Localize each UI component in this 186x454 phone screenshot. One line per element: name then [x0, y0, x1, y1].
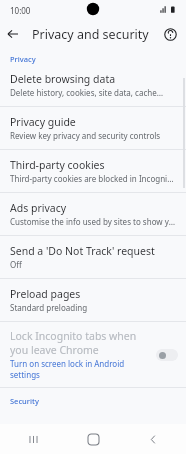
- button[interactable]: Home: [80, 426, 106, 452]
- staticText: Off: [10, 259, 22, 270]
- button[interactable]: Send a 'Do Not Track' request: [0, 236, 186, 278]
- button[interactable]: Help: [158, 22, 182, 46]
- staticText: Delete history, cookies, site data, cach…: [10, 87, 164, 98]
- button[interactable]: Ads privacy: [0, 193, 186, 235]
- staticText: Security: [10, 396, 186, 406]
- button[interactable]: Privacy guide: [0, 107, 186, 149]
- staticText: Preload pages: [10, 287, 81, 301]
- button[interactable]: Delete browsing data: [0, 67, 186, 106]
- staticText: Turn on screen lock in Android settings: [10, 358, 150, 380]
- staticText: Privacy guide: [10, 115, 76, 129]
- staticText: Privacy: [10, 54, 186, 64]
- button[interactable]: Lock Incognito tabs when you leave Chrom…: [0, 322, 186, 387]
- staticText: Third-party cookies: [10, 158, 105, 172]
- other: Lock Incognito tabs toggle: [156, 349, 178, 361]
- staticText: Standard preloading: [10, 302, 88, 313]
- staticText: Send a 'Do Not Track' request: [10, 244, 155, 258]
- staticText: Delete browsing data: [10, 72, 116, 86]
- staticText: 10:00: [10, 5, 31, 16]
- button[interactable]: Preload pages: [0, 279, 186, 321]
- staticText: Customise the info used by sites to show…: [10, 216, 176, 227]
- button[interactable]: Third-party cookies: [0, 150, 186, 192]
- staticText: Ads privacy: [10, 201, 67, 215]
- staticText: Third-party cookies are blocked in Incog…: [10, 173, 176, 184]
- button[interactable]: Back: [140, 426, 166, 452]
- button[interactable]: Back: [0, 21, 26, 47]
- staticText: Review key privacy and security controls: [10, 130, 161, 141]
- staticText: Lock Incognito tabs when you leave Chrom…: [10, 329, 150, 357]
- button[interactable]: Recent apps: [20, 426, 46, 452]
- staticText: Privacy and security: [32, 26, 149, 43]
